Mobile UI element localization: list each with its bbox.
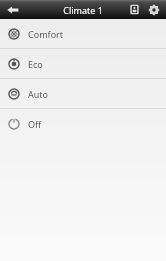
button[interactable]: Back <box>0 0 26 19</box>
button[interactable]: Comfort <box>0 19 166 48</box>
staticText: Comfort <box>28 28 64 40</box>
button[interactable]: Info <box>125 0 144 19</box>
staticText: Eco <box>28 58 43 70</box>
staticText: Climate 1 <box>63 4 103 16</box>
staticText: Off <box>28 118 42 130</box>
staticText: Auto <box>28 88 49 100</box>
button[interactable]: Off <box>0 109 166 138</box>
button[interactable]: Settings <box>144 0 163 19</box>
button[interactable]: Eco <box>0 49 166 78</box>
button[interactable]: Auto <box>0 79 166 108</box>
